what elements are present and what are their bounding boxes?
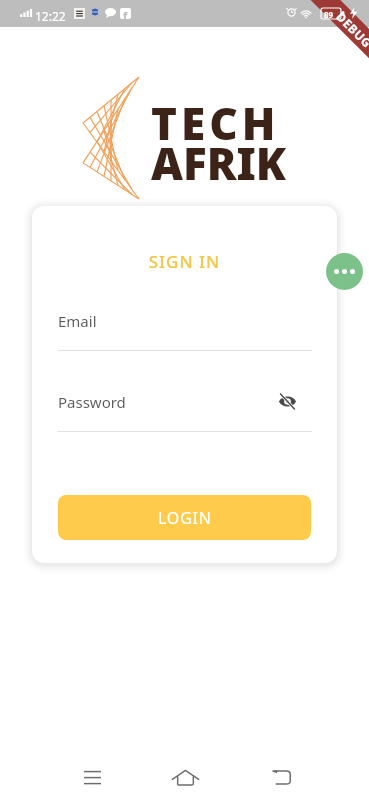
staticText: AFRIK [151, 133, 287, 193]
staticText: Password [58, 392, 126, 412]
button[interactable]: Recent apps [76, 762, 109, 792]
staticText: TECH [151, 93, 280, 153]
staticText: 89 [324, 9, 334, 20]
staticText: SIGN IN [32, 250, 337, 273]
staticText: 12:22 [35, 8, 66, 24]
staticText: DEBUG [333, 8, 369, 51]
button[interactable]: Back [265, 762, 298, 792]
button[interactable]: Home [169, 762, 202, 792]
staticText: Email [58, 311, 97, 331]
button[interactable]: LOGIN [58, 495, 311, 540]
staticText: LOGIN [158, 507, 212, 529]
button[interactable]: Toggle password visibility [274, 388, 300, 414]
staticText: f [123, 8, 128, 19]
button[interactable]: More options [326, 253, 363, 290]
